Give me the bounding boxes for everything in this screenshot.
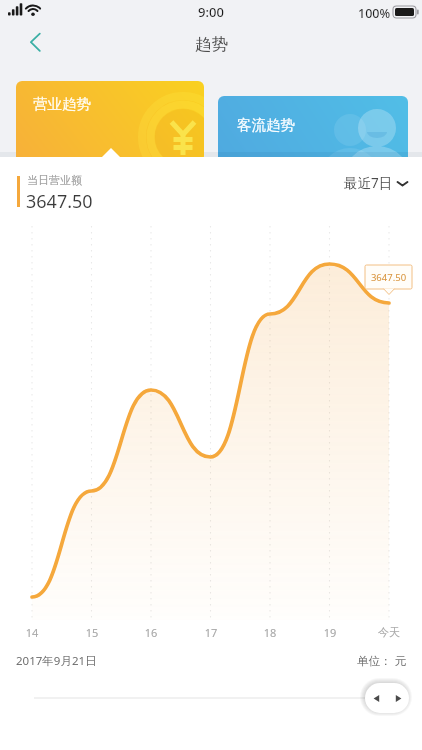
button[interactable]: Back: [14, 26, 58, 66]
staticText: 15: [76, 625, 108, 640]
staticText: 16: [135, 625, 167, 640]
staticText: 100%: [358, 5, 391, 22]
button[interactable]: Previous: [365, 683, 387, 713]
staticText: 当日营业额: [27, 173, 82, 187]
staticText: 3647.50: [26, 189, 93, 214]
staticText: 单位： 元: [357, 653, 406, 669]
staticText: 19: [314, 625, 346, 640]
staticText: 营业趋势: [33, 95, 91, 113]
staticText: 3647.50: [365, 271, 412, 284]
staticText: 2017年9月21日: [16, 653, 97, 669]
staticText: 最近7日: [344, 174, 393, 192]
staticText: 客流趋势: [237, 116, 295, 134]
button[interactable]: 最近7日: [344, 174, 409, 192]
staticText: 14: [16, 625, 48, 640]
button[interactable]: Next: [387, 683, 409, 713]
staticText: 17: [195, 625, 227, 640]
staticText: 趋势: [195, 34, 228, 55]
button[interactable]: 客流趋势: [218, 96, 408, 157]
staticText: 9:00: [198, 3, 224, 21]
staticText: 今天: [373, 625, 405, 639]
staticText: 18: [254, 625, 286, 640]
button[interactable]: 营业趋势: [16, 81, 204, 157]
